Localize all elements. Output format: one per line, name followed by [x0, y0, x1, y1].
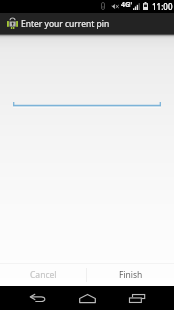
button[interactable]: Cancel: [0, 264, 86, 286]
button[interactable]: Home: [65, 286, 109, 310]
button[interactable]: Back: [16, 286, 60, 310]
staticText: 11:00: [152, 1, 173, 12]
staticText: Finish: [119, 269, 143, 281]
staticText: Enter your current pin: [21, 18, 110, 30]
button[interactable]: Recents: [115, 286, 159, 310]
staticText: Cancel: [30, 269, 57, 281]
staticText: 4G: [121, 0, 131, 10]
button[interactable]: Finish: [87, 264, 174, 286]
